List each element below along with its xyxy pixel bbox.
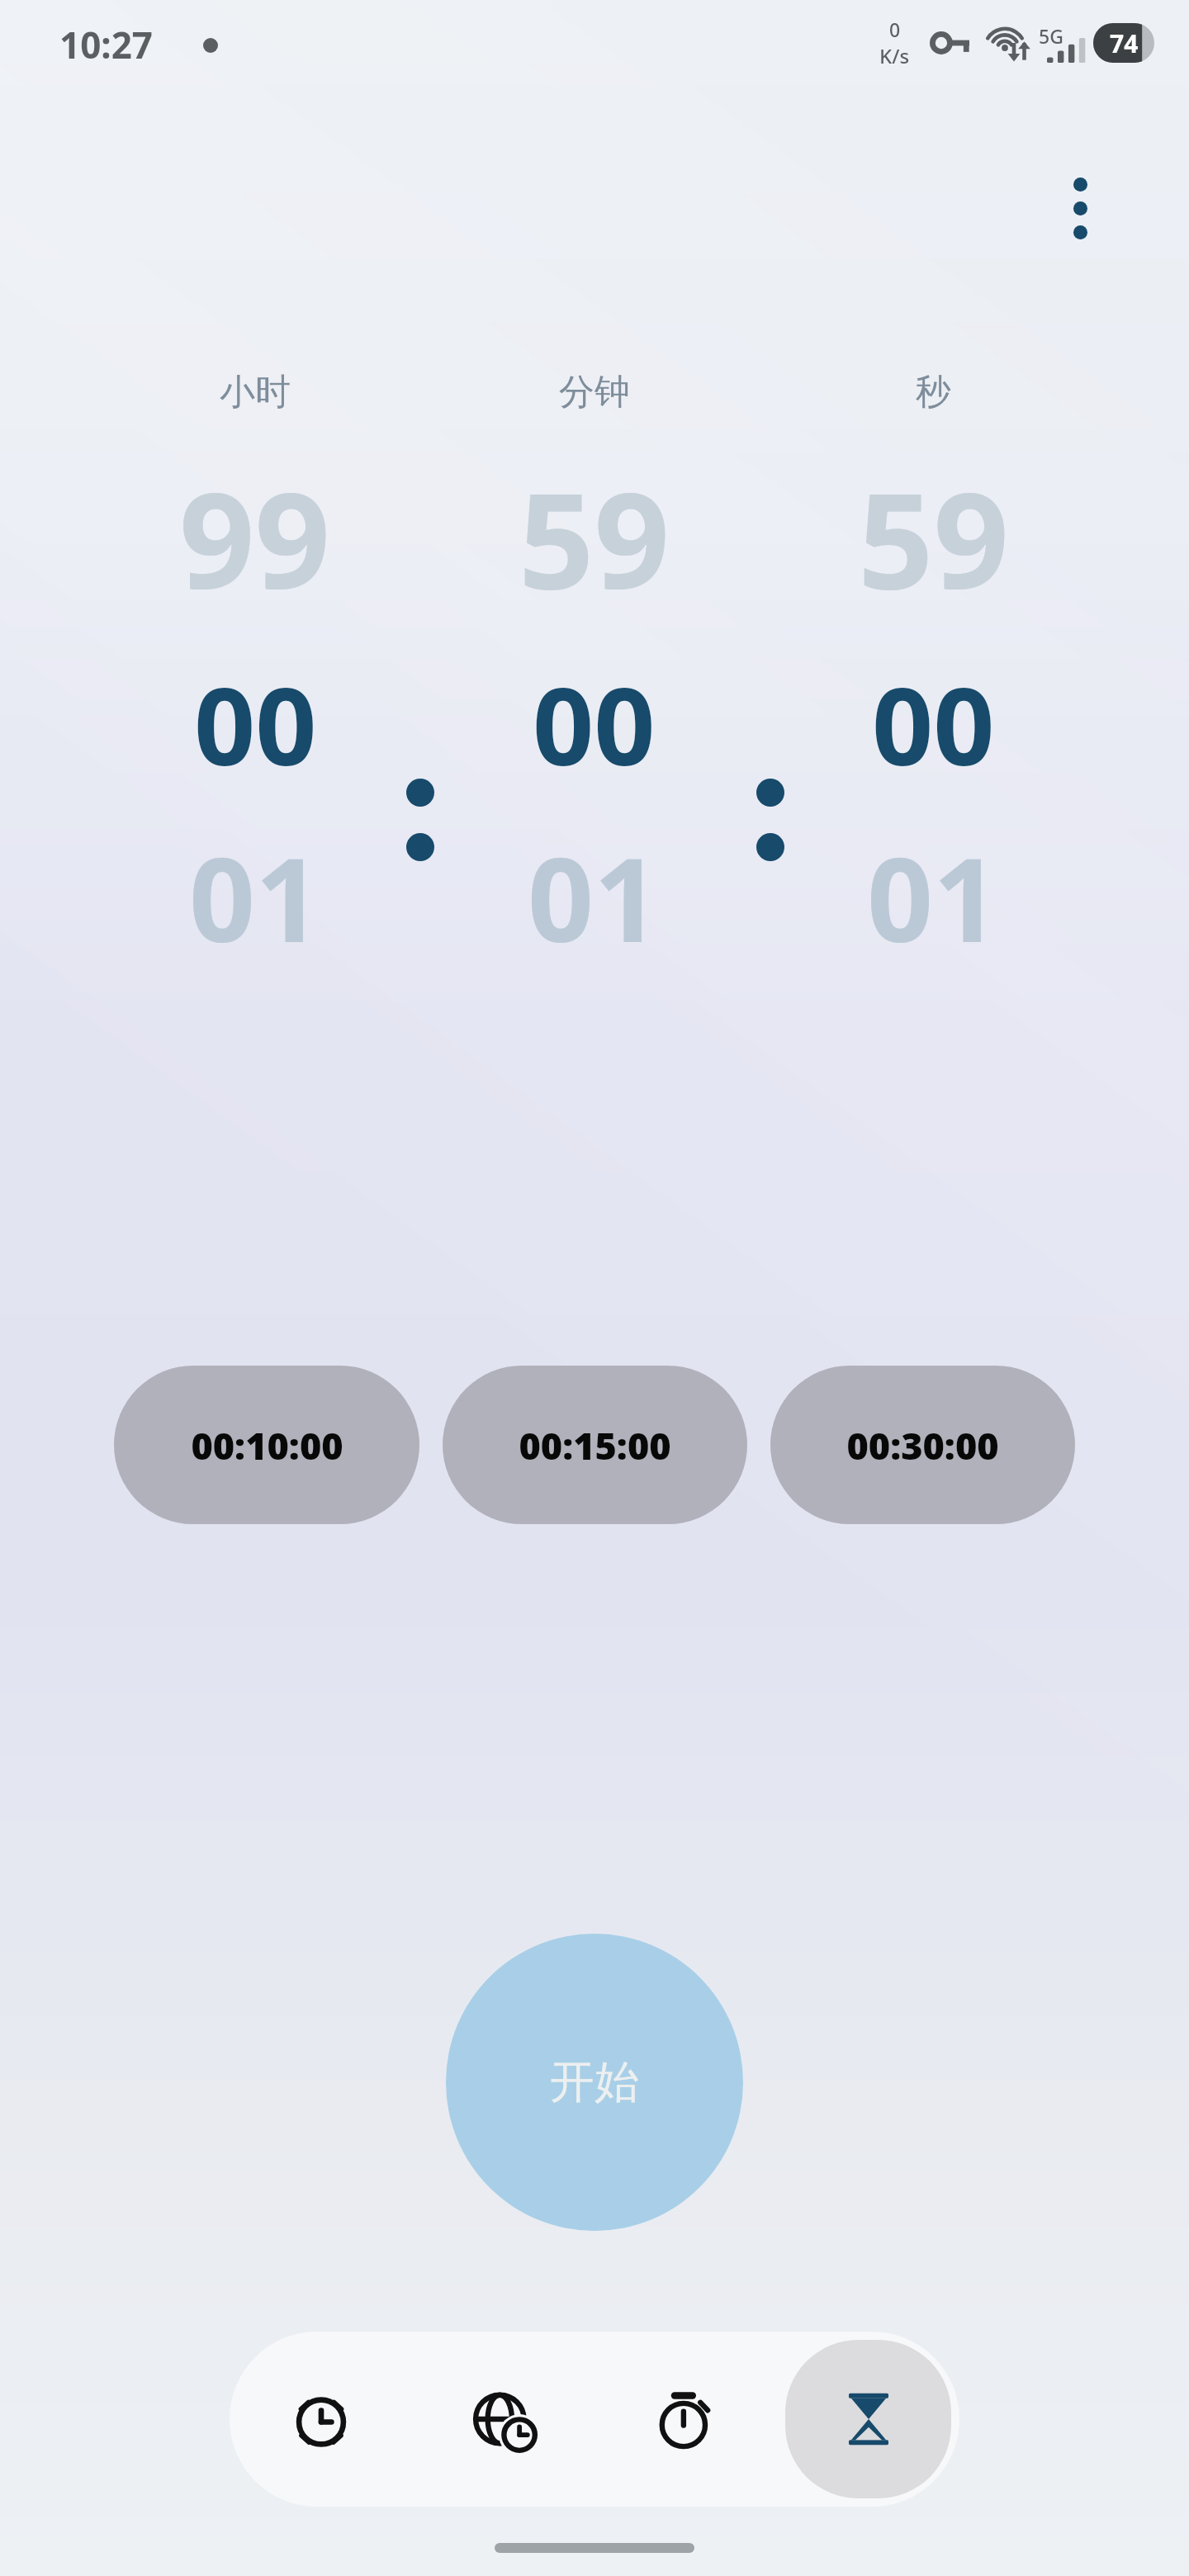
button[interactable]: 小时 <box>86 370 424 976</box>
staticText: 秒 <box>916 370 951 414</box>
staticText: 01 <box>528 818 661 976</box>
button[interactable]: 00:10:00 <box>114 1366 419 1524</box>
staticText: 74 <box>1110 26 1139 60</box>
staticText: 0 <box>889 17 901 42</box>
staticText: 01 <box>867 818 1000 976</box>
button[interactable]: 分钟 <box>424 370 764 976</box>
staticText: 00:10:00 <box>191 1420 343 1470</box>
staticText: K/s <box>879 42 910 69</box>
button[interactable]: 00:15:00 <box>443 1366 747 1524</box>
staticText: 10:27 <box>59 20 154 69</box>
button[interactable]: World clock <box>420 2340 586 2498</box>
staticText: 分钟 <box>559 370 630 414</box>
button[interactable]: Timer <box>785 2340 951 2498</box>
button[interactable]: Stopwatch <box>603 2340 769 2498</box>
button[interactable]: 开始 <box>446 1934 743 2231</box>
staticText: 59 <box>858 447 1010 627</box>
staticText: 5G <box>1039 23 1063 49</box>
button[interactable]: More options <box>1032 160 1128 256</box>
button[interactable]: 00:30:00 <box>770 1366 1075 1524</box>
staticText: 00:30:00 <box>846 1420 999 1470</box>
staticText: 00 <box>194 651 317 797</box>
staticText: 00:15:00 <box>519 1420 671 1470</box>
staticText: 00 <box>533 651 656 797</box>
staticText: 99 <box>179 447 331 627</box>
staticText: 59 <box>519 447 670 627</box>
button[interactable]: 秒 <box>764 370 1103 976</box>
staticText: 00 <box>872 651 995 797</box>
staticText: 开始 <box>550 2054 639 2110</box>
staticText: 01 <box>189 818 322 976</box>
staticText: 小时 <box>220 370 291 414</box>
button[interactable]: Alarm <box>238 2340 404 2498</box>
